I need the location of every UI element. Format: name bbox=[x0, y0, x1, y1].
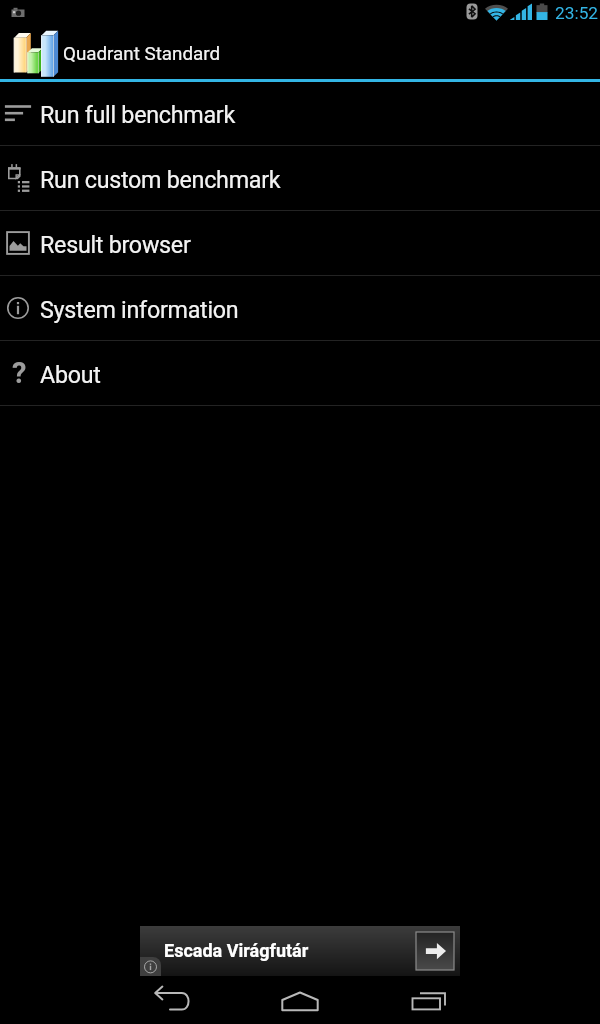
button[interactable]: Escada Virágfutár bbox=[140, 926, 460, 976]
button[interactable]: Result browser bbox=[0, 211, 600, 275]
staticText: ? bbox=[12, 356, 27, 390]
button[interactable]: Run custom benchmark bbox=[0, 146, 600, 210]
button[interactable]: ? bbox=[0, 341, 600, 405]
button[interactable]: System information bbox=[0, 276, 600, 340]
button[interactable]: Run full benchmark bbox=[0, 81, 600, 145]
staticText: About bbox=[40, 361, 101, 388]
button[interactable]: Recent apps bbox=[378, 976, 478, 1024]
staticText: 23:52 bbox=[555, 3, 599, 23]
button[interactable]: Quadrant Standard bbox=[0, 28, 600, 79]
staticText: System information bbox=[40, 296, 239, 323]
staticText: Escada Virágfutár bbox=[164, 940, 309, 961]
staticText: Result browser bbox=[40, 231, 191, 258]
staticText: Quadrant Standard bbox=[63, 43, 221, 65]
staticText: Run custom benchmark bbox=[40, 166, 281, 193]
button[interactable]: Back bbox=[122, 976, 222, 1024]
button[interactable]: Home bbox=[250, 976, 350, 1024]
button[interactable]: Ad info bbox=[140, 957, 161, 976]
staticText: Run full benchmark bbox=[40, 101, 235, 128]
button[interactable]: Open advertisement bbox=[416, 932, 454, 970]
